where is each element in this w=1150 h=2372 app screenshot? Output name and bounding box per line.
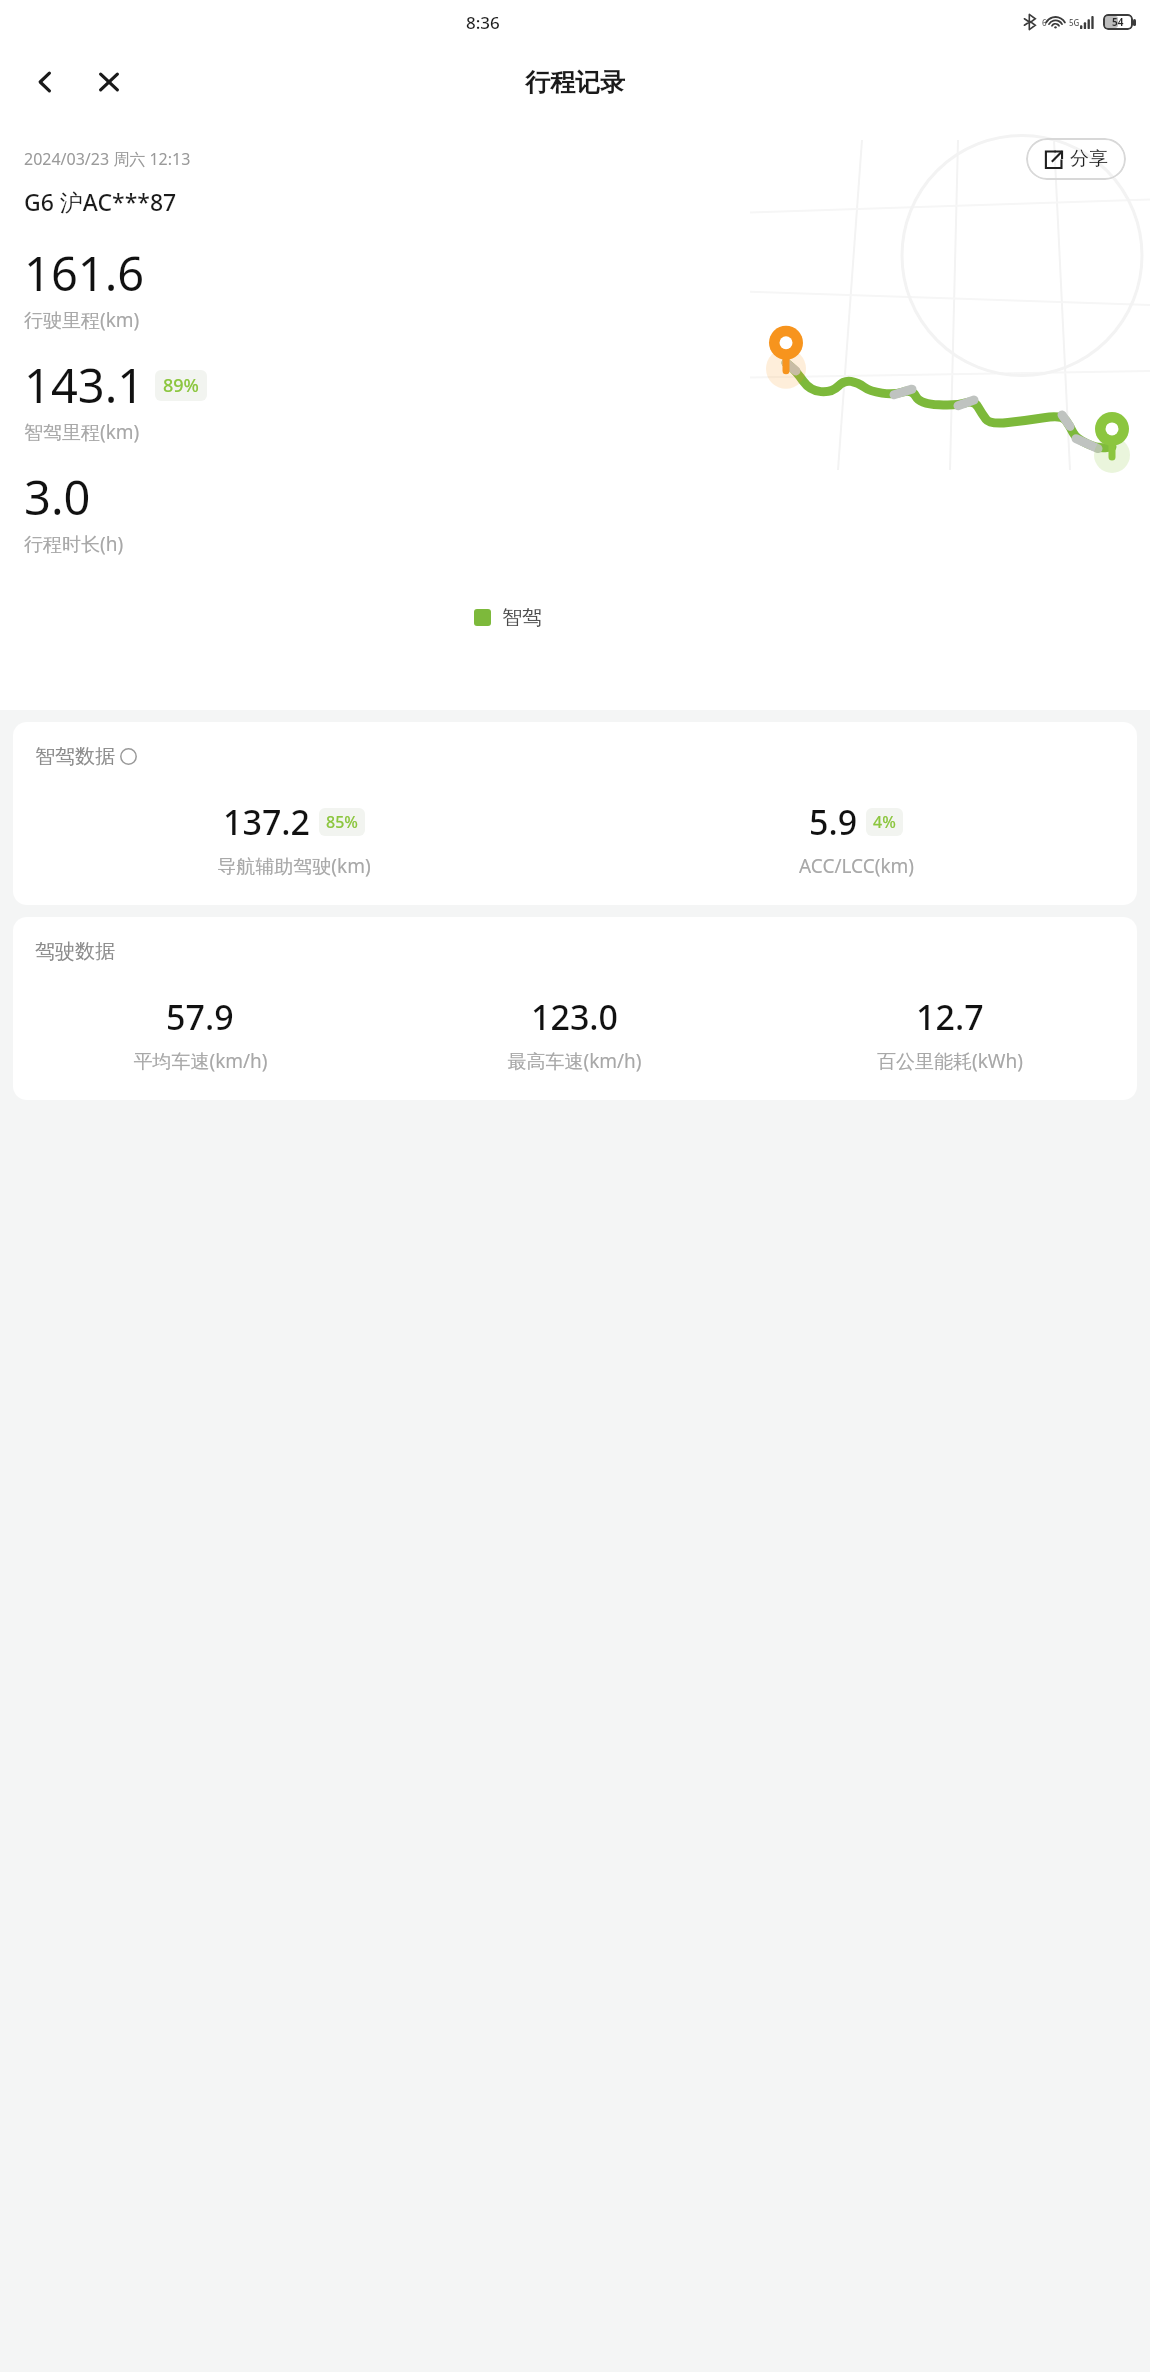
staticText: 89%	[163, 373, 199, 398]
staticText: 平均车速(km/h)	[133, 1048, 268, 1074]
staticText: 143.1	[24, 353, 145, 417]
staticText: 6	[1042, 17, 1047, 28]
staticText: 137.2	[223, 799, 311, 845]
staticText: 123.0	[531, 994, 619, 1040]
button[interactable]: 智驾数据	[13, 722, 1137, 905]
staticText: 5G	[1069, 17, 1080, 28]
staticText: G6 沪AC***87	[24, 186, 177, 217]
button[interactable]: Close	[84, 57, 134, 107]
button[interactable]: Back	[20, 57, 70, 107]
staticText: 2024/03/23 周六 12:13	[24, 148, 191, 170]
staticText: 分享	[1070, 147, 1108, 171]
staticText: 85%	[326, 811, 358, 833]
staticText: 12.7	[916, 994, 984, 1040]
staticText: 智驾数据	[35, 744, 115, 769]
staticText: 3.0	[24, 465, 91, 529]
staticText: ACC/LCC(km)	[799, 853, 914, 879]
staticText: 行程时长(h)	[24, 531, 124, 557]
staticText: 导航辅助驾驶(km)	[217, 853, 371, 879]
staticText: 智驾	[502, 605, 542, 630]
staticText: 8:36	[466, 11, 500, 34]
staticText: 百公里能耗(kWh)	[877, 1048, 1023, 1074]
staticText: 5.9	[809, 799, 858, 845]
staticText: 行驶里程(km)	[24, 307, 140, 333]
button[interactable]: 分享	[1026, 138, 1126, 180]
staticText: 161.6	[24, 241, 145, 305]
staticText: 最高车速(km/h)	[507, 1048, 642, 1074]
button[interactable]: 驾驶数据	[13, 917, 1137, 1100]
staticText: 57.9	[166, 994, 234, 1040]
staticText: 驾驶数据	[35, 939, 115, 964]
staticText: 智驾里程(km)	[24, 419, 140, 445]
staticText: 4%	[873, 811, 896, 833]
staticText: 行程记录	[525, 67, 625, 98]
staticText: 54	[1112, 15, 1124, 29]
